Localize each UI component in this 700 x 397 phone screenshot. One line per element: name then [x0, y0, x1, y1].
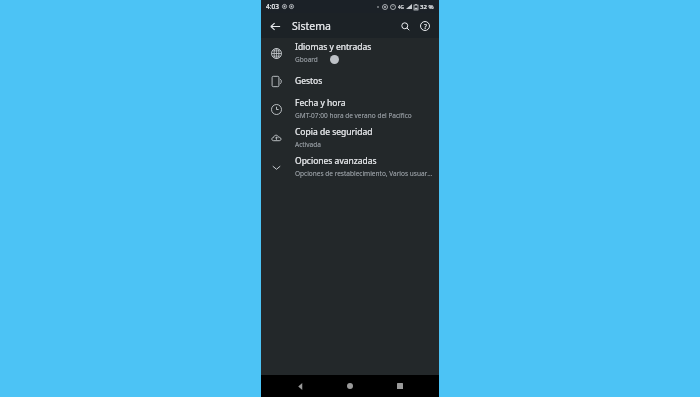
staticText: 4:03 — [266, 2, 279, 11]
button[interactable]: Opciones avanzadas — [261, 152, 439, 181]
staticText: Opciones de restablecimiento, Varios usu… — [295, 169, 433, 178]
staticText: Opciones avanzadas — [295, 155, 377, 167]
button[interactable]: Fecha y hora — [261, 94, 439, 123]
button[interactable]: Back — [289, 375, 311, 397]
button[interactable]: Gestos — [261, 67, 439, 94]
button[interactable]: Copia de seguridad — [261, 123, 439, 152]
button[interactable]: Idiomas y entradas — [261, 38, 439, 67]
staticText: Sistema — [292, 19, 331, 33]
staticText: 32 % — [420, 3, 434, 11]
staticText: Gboard — [295, 55, 318, 64]
staticText: 4G — [398, 4, 404, 10]
staticText: GMT-07:00 hora de verano del Pacífico — [295, 111, 412, 120]
button[interactable]: Search — [396, 17, 414, 35]
staticText: ? — [424, 22, 427, 31]
button[interactable]: Home — [339, 375, 361, 397]
staticText: Gestos — [295, 75, 323, 87]
staticText: Fecha y hora — [295, 97, 346, 109]
button[interactable]: Back — [266, 17, 284, 35]
button[interactable]: Help — [416, 17, 434, 35]
staticText: Copia de seguridad — [295, 126, 373, 138]
staticText: Idiomas y entradas — [295, 41, 372, 53]
button[interactable]: Recent apps — [389, 375, 411, 397]
staticText: Activada — [295, 140, 321, 149]
